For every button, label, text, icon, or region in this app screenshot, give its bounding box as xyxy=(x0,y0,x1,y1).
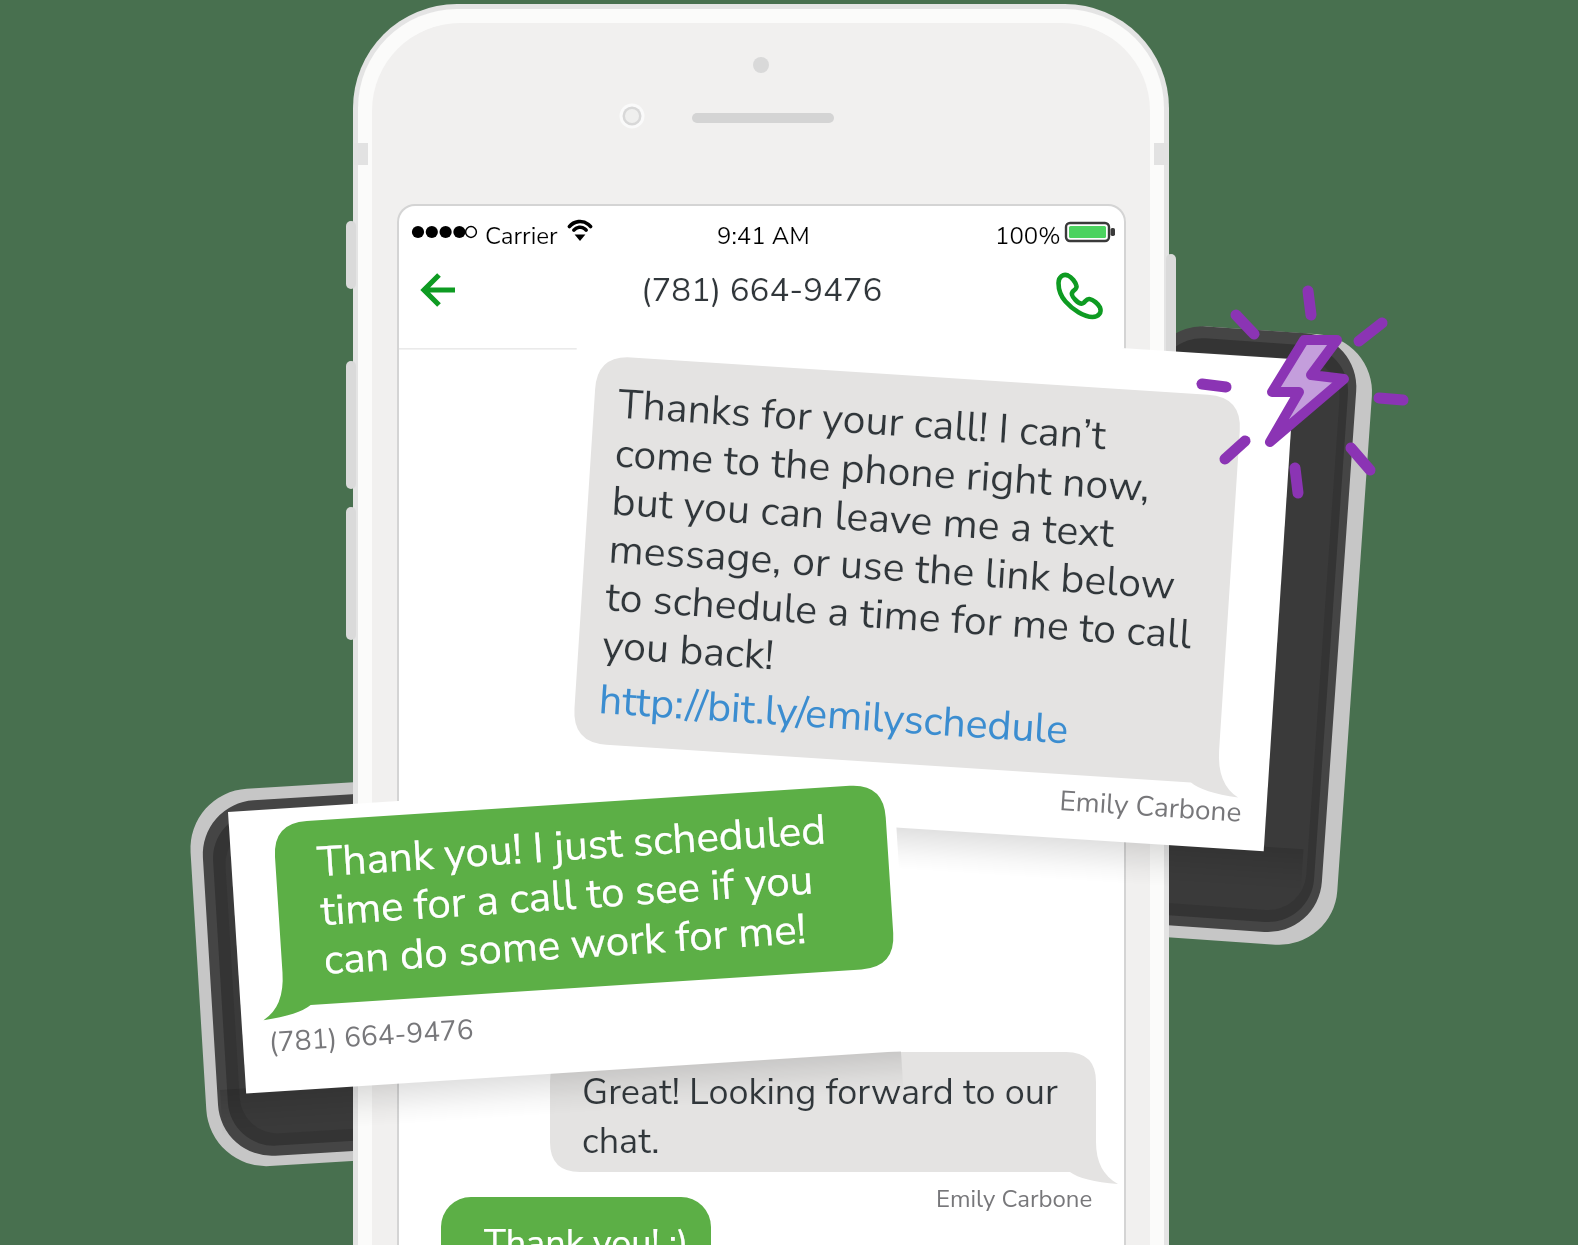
staticText: http://bit.ly/emilyschedule xyxy=(597,672,1071,758)
staticText: 9:41 AM xyxy=(717,220,810,253)
staticText: Emily Carbone xyxy=(1058,782,1243,832)
staticText: (781) 664-9476 xyxy=(641,268,883,313)
staticText: Thank you! :) xyxy=(484,1219,689,1245)
staticText: 100% xyxy=(995,220,1061,253)
staticText: Carrier xyxy=(485,220,558,253)
staticText: Emily Carbone xyxy=(936,1183,1136,1223)
button[interactable]: Call xyxy=(1053,271,1105,323)
staticText: Thanks for your call! I can’t come to th… xyxy=(601,377,1215,711)
button[interactable]: Back xyxy=(411,264,467,320)
staticText: (781) 664-9476 xyxy=(268,1011,475,1062)
staticText: Thank you! I just scheduled time for a c… xyxy=(316,800,854,989)
staticText: Great! Looking forward to our chat. xyxy=(582,1068,1070,1165)
